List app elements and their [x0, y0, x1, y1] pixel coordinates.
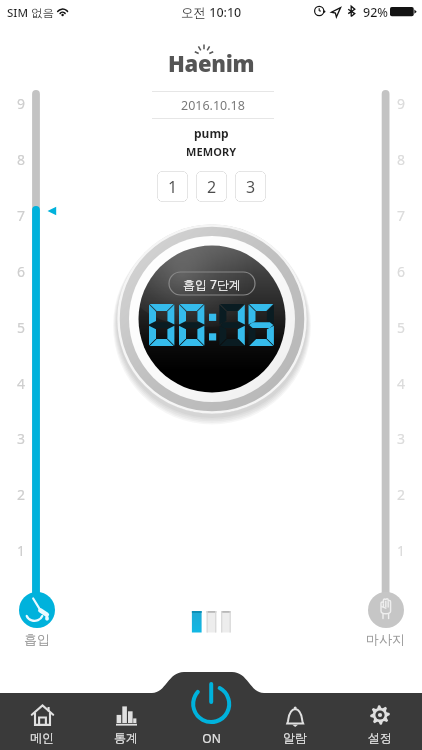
- staticText: 오전 10:10: [181, 4, 242, 21]
- button[interactable]: 1: [157, 171, 188, 202]
- staticText: 92%: [363, 4, 388, 21]
- staticText: 7: [17, 206, 26, 225]
- staticText: 1: [168, 176, 178, 198]
- staticText: 메인: [30, 730, 54, 745]
- staticText: 5: [17, 318, 26, 337]
- staticText: 3: [17, 429, 26, 448]
- staticText: 8: [397, 150, 406, 169]
- staticText: 1: [17, 541, 26, 560]
- button[interactable]: 설정: [338, 696, 422, 750]
- staticText: MEMORY: [186, 144, 237, 159]
- staticText: 9: [17, 94, 26, 113]
- staticText: 2: [17, 485, 26, 504]
- staticText: 4: [397, 374, 406, 393]
- button[interactable]: 메인: [0, 696, 84, 750]
- staticText: 통계: [114, 730, 138, 745]
- staticText: 2016.10.18: [181, 97, 245, 114]
- staticText: 8: [17, 150, 26, 169]
- staticText: ON: [202, 730, 221, 746]
- staticText: 설정: [368, 730, 392, 745]
- staticText: 알람: [283, 730, 307, 745]
- staticText: 3: [246, 176, 256, 198]
- staticText: 5: [397, 318, 406, 337]
- staticText: 2: [207, 176, 217, 198]
- staticText: 6: [17, 262, 26, 281]
- staticText: 마사지: [366, 631, 405, 647]
- button[interactable]: 알람: [253, 696, 337, 750]
- staticText: 2: [397, 485, 406, 504]
- staticText: 4: [17, 374, 26, 393]
- staticText: 3: [397, 429, 406, 448]
- staticText: 9: [397, 94, 406, 113]
- button[interactable]: 3: [235, 171, 266, 202]
- button[interactable]: 마사지 레벨: [368, 592, 404, 628]
- staticText: 6: [397, 262, 406, 281]
- button[interactable]: 흡입 레벨: [19, 592, 55, 628]
- staticText: pump: [194, 125, 229, 141]
- staticText: 7: [397, 206, 406, 225]
- button[interactable]: 2: [196, 171, 227, 202]
- button[interactable]: 통계: [84, 696, 168, 750]
- staticText: SIM 없음: [7, 5, 54, 21]
- staticText: 흡입 7단계: [183, 276, 241, 292]
- staticText: 1: [397, 541, 406, 560]
- button[interactable]: ON: [169, 671, 253, 750]
- staticText: Haenim: [168, 48, 255, 78]
- staticText: 흡입: [24, 631, 50, 647]
